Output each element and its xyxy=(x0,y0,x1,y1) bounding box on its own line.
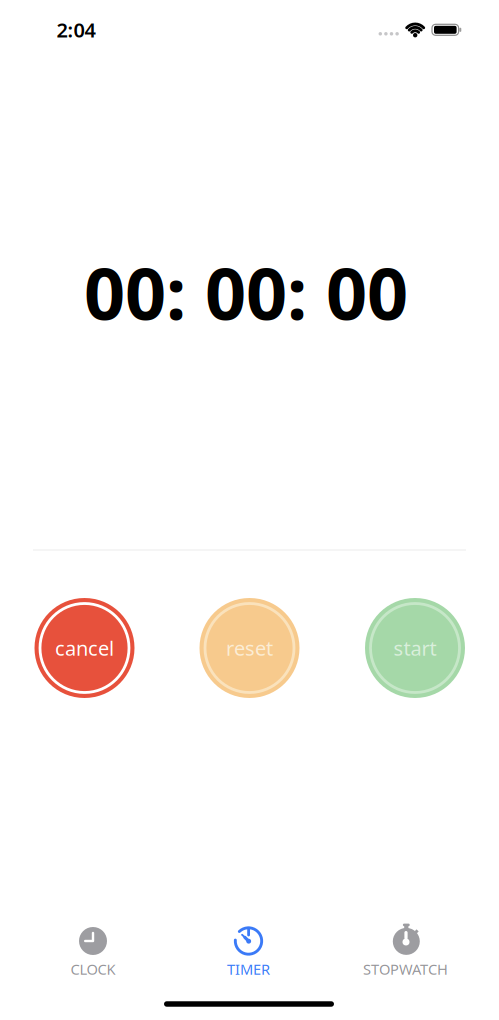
staticText: CLOCK xyxy=(70,959,115,979)
button[interactable]: start xyxy=(365,598,465,698)
button[interactable]: TIMER xyxy=(193,922,303,978)
staticText: cancel xyxy=(55,635,114,661)
staticText: reset xyxy=(226,635,273,661)
staticText: start xyxy=(393,635,436,661)
button[interactable]: CLOCK xyxy=(38,922,148,978)
staticText: 00: 00: 00 xyxy=(84,244,408,340)
button[interactable]: reset xyxy=(199,598,299,698)
button[interactable]: cancel xyxy=(34,598,134,698)
staticText: TIMER xyxy=(227,959,270,979)
button[interactable]: STOPWATCH xyxy=(350,922,460,978)
staticText: STOPWATCH xyxy=(363,959,448,979)
staticText: 2:04 xyxy=(56,16,95,43)
